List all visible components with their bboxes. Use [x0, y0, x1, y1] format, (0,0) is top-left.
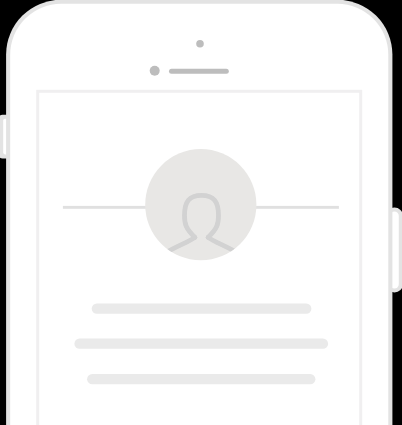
button[interactable]: Phone mockup illustration — [0, 0, 402, 425]
